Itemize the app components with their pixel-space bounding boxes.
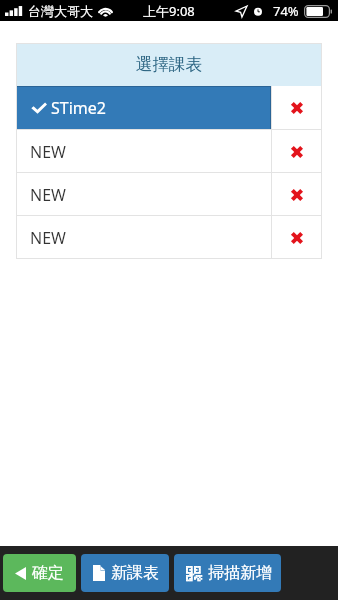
staticText: NEW <box>30 141 66 163</box>
staticText: 74% <box>273 2 299 20</box>
button[interactable]: NEW <box>16 173 271 216</box>
button[interactable]: Delete <box>272 86 322 130</box>
staticText: 掃描新增 <box>208 563 272 583</box>
staticText: 新課表 <box>111 563 159 583</box>
button[interactable]: 新課表 <box>81 554 169 592</box>
button[interactable]: NEW <box>16 216 271 259</box>
staticText: 上午9:08 <box>143 2 195 20</box>
staticText: STime2 <box>51 97 106 119</box>
staticText: NEW <box>30 184 66 206</box>
staticText: 選擇課表 <box>136 54 202 75</box>
staticText: NEW <box>30 227 66 249</box>
button[interactable]: Delete <box>272 173 322 216</box>
button[interactable]: 確定 <box>3 554 76 592</box>
staticText: 台灣大哥大 <box>28 3 93 19</box>
button[interactable]: Delete <box>272 130 322 173</box>
staticText: 確定 <box>32 563 64 583</box>
button[interactable]: Delete <box>272 216 322 259</box>
button[interactable]: 掃描新增 <box>174 554 281 592</box>
button[interactable]: NEW <box>16 130 271 173</box>
button[interactable]: STime2 <box>17 87 270 129</box>
